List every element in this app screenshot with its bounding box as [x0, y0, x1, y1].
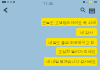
button[interactable]: 오늘도 고생많으셨어요 푹 쉬세요~	[41, 18, 97, 26]
staticText: 네 감사	[80, 30, 93, 35]
staticText: 네 내일 뵙겠습니다 감사해요	[46, 59, 96, 64]
button[interactable]: 내일도 좋은 하루되시고 화이팅	[46, 38, 97, 46]
button[interactable]: 조심히 들어가 주세요	[56, 47, 97, 55]
staticText: 오늘도 고생많으셨어요 푹 쉬세요~	[42, 20, 96, 25]
staticText: 조심히 들어가 주세요	[58, 49, 96, 54]
button[interactable]: Search	[80, 7, 86, 13]
button[interactable]: Menu	[89, 8, 95, 14]
staticText: 내일도 좋은 하루되시고 화이팅	[47, 40, 96, 45]
staticText: 11:46	[43, 1, 54, 6]
button[interactable]: Back	[2, 6, 9, 13]
button[interactable]: 네 감사	[76, 28, 97, 36]
button[interactable]: 네 내일 뵙겠습니다 감사해요	[44, 57, 97, 66]
